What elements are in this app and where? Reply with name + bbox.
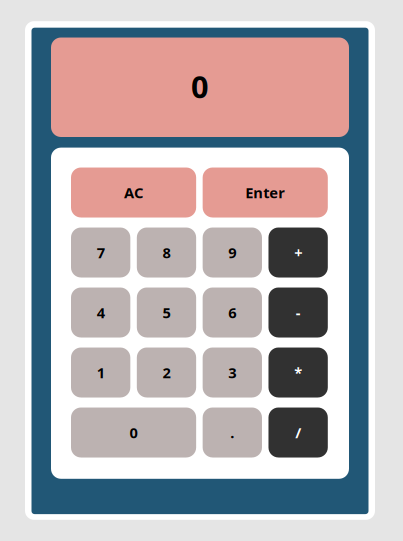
button[interactable]: 8 [137,227,196,277]
staticText: 5 [162,303,170,322]
button[interactable]: 2 [137,347,196,397]
button[interactable]: 3 [203,347,262,397]
staticText: 2 [162,363,170,382]
button[interactable]: 1 [71,347,130,397]
staticText: / [295,423,301,442]
button[interactable]: 6 [203,287,262,337]
staticText: 8 [162,243,170,262]
staticText: AC [124,183,143,202]
button[interactable]: 0 [71,407,196,457]
button[interactable]: Minus [268,287,328,337]
button[interactable]: Decimal point [203,407,262,457]
button[interactable]: 5 [137,287,196,337]
staticText: 9 [228,243,236,262]
staticText: Enter [245,183,285,202]
button[interactable]: Enter [203,167,328,217]
staticText: . [230,423,234,442]
button[interactable]: Divide [268,407,328,457]
staticText: 7 [97,243,105,262]
staticText: 0 [130,423,138,442]
button[interactable]: All clear [71,167,196,217]
button[interactable]: 7 [71,227,130,277]
staticText: + [294,243,302,262]
button[interactable]: Multiply [268,347,328,397]
staticText: - [296,303,301,322]
staticText: 6 [228,303,236,322]
staticText: 1 [97,363,105,382]
staticText: * [294,363,302,382]
staticText: 0 [191,66,209,107]
staticText: 4 [97,303,105,322]
staticText: 3 [228,363,236,382]
button[interactable]: 9 [203,227,262,277]
button[interactable]: 4 [71,287,130,337]
button[interactable]: Plus [268,227,328,277]
